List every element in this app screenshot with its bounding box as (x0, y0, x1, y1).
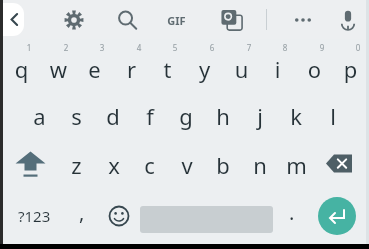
staticText: 4 (133, 42, 145, 54)
button[interactable]: Shift (3, 141, 58, 189)
button[interactable]: q (3, 41, 40, 90)
staticText: a (33, 101, 46, 131)
staticText: GIF (167, 13, 186, 28)
staticText: s (71, 101, 82, 131)
button[interactable]: d (94, 92, 131, 140)
button[interactable]: h (204, 92, 241, 140)
button[interactable]: Translate (220, 8, 244, 32)
staticText: z (71, 150, 82, 180)
staticText: h (216, 101, 230, 131)
staticText: l (330, 101, 336, 131)
button[interactable]: Settings (62, 8, 86, 32)
button[interactable]: c (131, 141, 168, 189)
staticText: 8 (279, 42, 291, 54)
staticText: t (149, 54, 186, 84)
button[interactable]: x (95, 141, 132, 189)
button[interactable]: l (314, 92, 351, 140)
button[interactable]: m (278, 141, 315, 189)
staticText: 5 (169, 42, 181, 54)
button[interactable]: v (168, 141, 205, 189)
staticText: v (181, 150, 193, 180)
staticText: r (113, 54, 150, 84)
staticText: 9 (316, 42, 328, 54)
button[interactable]: Emoji (100, 192, 138, 240)
button[interactable]: u (223, 41, 260, 90)
staticText: m (286, 150, 307, 180)
staticText: 0 (352, 42, 364, 54)
staticText: q (3, 54, 40, 84)
staticText: i (259, 54, 296, 84)
button[interactable]: n (241, 141, 278, 189)
button[interactable]: Search (115, 8, 139, 32)
staticText: 2 (60, 42, 72, 54)
button[interactable]: r (113, 41, 150, 90)
staticText: e (76, 54, 113, 84)
button[interactable]: i (259, 41, 296, 90)
button[interactable]: . (277, 192, 307, 240)
staticText: . (289, 199, 295, 226)
button[interactable]: Enter (318, 197, 356, 235)
staticText: ?123 (18, 206, 51, 226)
button[interactable]: GIF (160, 8, 192, 32)
staticText: p (332, 54, 369, 84)
staticText: 1 (23, 42, 35, 54)
button[interactable]: a (21, 92, 58, 140)
button[interactable]: , (64, 192, 100, 240)
staticText: , (79, 199, 85, 226)
staticText: w (40, 54, 77, 84)
button[interactable]: f (131, 92, 168, 140)
staticText: f (146, 101, 154, 131)
button[interactable]: s (58, 92, 95, 140)
button[interactable]: y (186, 41, 223, 90)
button[interactable]: o (296, 41, 333, 90)
staticText: b (216, 150, 230, 180)
button[interactable]: Back (2, 3, 24, 36)
staticText: x (108, 150, 120, 180)
staticText: 6 (206, 42, 218, 54)
staticText: c (144, 150, 155, 180)
staticText: u (223, 54, 260, 84)
staticText: o (296, 54, 333, 84)
button[interactable]: j (241, 92, 278, 140)
staticText: y (186, 54, 223, 84)
button[interactable]: e (76, 41, 113, 90)
staticText: k (290, 101, 302, 131)
button[interactable]: More options (290, 8, 316, 32)
button[interactable]: p (332, 41, 369, 90)
staticText: 3 (96, 42, 108, 54)
button[interactable]: k (277, 92, 314, 140)
button[interactable]: b (204, 141, 241, 189)
button[interactable]: Voice input (336, 7, 360, 33)
staticText: g (179, 101, 193, 131)
button[interactable]: z (58, 141, 95, 189)
button[interactable]: t (149, 41, 186, 90)
staticText: d (106, 101, 120, 131)
staticText: 7 (243, 42, 255, 54)
button[interactable]: g (167, 92, 204, 140)
button[interactable]: w (40, 41, 77, 90)
staticText: n (253, 150, 267, 180)
staticText: j (257, 101, 263, 131)
button[interactable]: ?123 (8, 192, 60, 240)
button[interactable]: Backspace (314, 141, 366, 189)
